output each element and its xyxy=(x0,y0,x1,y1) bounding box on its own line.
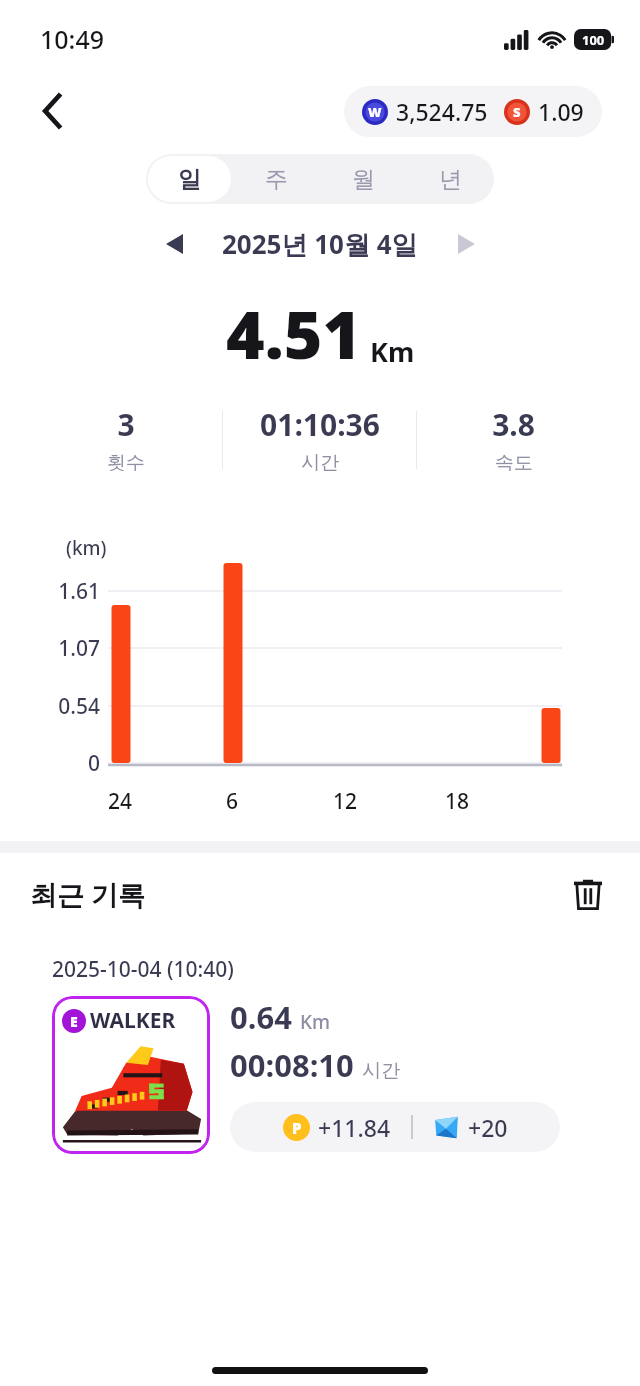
button[interactable]: Next day xyxy=(444,222,488,266)
button[interactable]: WALKER NFT xyxy=(52,996,210,1154)
button[interactable]: Delete records xyxy=(562,868,614,920)
staticText: 18 xyxy=(427,787,487,816)
staticText: 최근 기록 xyxy=(30,876,146,913)
staticText: 1.61 xyxy=(0,577,100,606)
staticText: 01:10:36 xyxy=(260,404,380,445)
staticText: 횟수 xyxy=(107,451,145,475)
staticText: 0.54 xyxy=(0,692,100,721)
staticText: +20 xyxy=(468,1112,508,1143)
staticText: 2025-10-04 (10:40) xyxy=(52,955,234,984)
staticText: 6 xyxy=(202,787,262,816)
staticText: 0 xyxy=(0,749,100,778)
button[interactable]: 2025-10-04 (10:40) xyxy=(30,935,610,1170)
staticText: 100 xyxy=(582,31,605,49)
staticText: +11.84 xyxy=(318,1112,391,1143)
staticText: 일 xyxy=(178,165,201,194)
staticText: 10:49 xyxy=(40,22,105,56)
button[interactable]: 01:10:36 xyxy=(223,404,416,475)
button[interactable]: 3 xyxy=(30,404,222,475)
staticText: P xyxy=(292,1118,302,1138)
staticText: 시간 xyxy=(362,1059,400,1083)
staticText: S xyxy=(513,103,521,121)
button[interactable]: Previous day xyxy=(152,222,196,266)
staticText: 00:08:10 xyxy=(230,1044,354,1086)
staticText: 0.64 xyxy=(230,996,292,1038)
button[interactable]: 일 xyxy=(148,156,231,202)
staticText: 1.09 xyxy=(538,96,584,127)
button[interactable]: W xyxy=(344,86,602,137)
staticText: 시간 xyxy=(301,451,339,475)
button[interactable]: 주 xyxy=(235,156,318,202)
button[interactable]: P xyxy=(230,1102,560,1152)
staticText: 12 xyxy=(315,787,375,816)
staticText: 24 xyxy=(90,787,150,816)
staticText: 3 xyxy=(117,404,135,445)
staticText: (km) xyxy=(66,535,107,561)
staticText: 2025년 10월 4일 xyxy=(222,226,418,262)
staticText: 월 xyxy=(352,165,375,194)
button[interactable]: Back xyxy=(26,83,82,139)
staticText: Km xyxy=(370,333,415,370)
button[interactable]: 월 xyxy=(322,156,405,202)
staticText: Km xyxy=(300,1009,331,1035)
staticText: 3,524.75 xyxy=(396,96,488,127)
staticText: 3.8 xyxy=(492,404,535,445)
staticText: WALKER xyxy=(90,1006,176,1035)
staticText: 1.07 xyxy=(0,634,100,663)
staticText: W xyxy=(368,103,382,121)
staticText: E xyxy=(70,1012,78,1031)
staticText: 4.51 xyxy=(226,288,362,378)
button[interactable]: 3.8 xyxy=(417,404,610,475)
staticText: 속도 xyxy=(495,451,533,475)
staticText: 주 xyxy=(265,165,288,194)
button[interactable]: 년 xyxy=(409,156,492,202)
staticText: 년 xyxy=(439,165,462,194)
